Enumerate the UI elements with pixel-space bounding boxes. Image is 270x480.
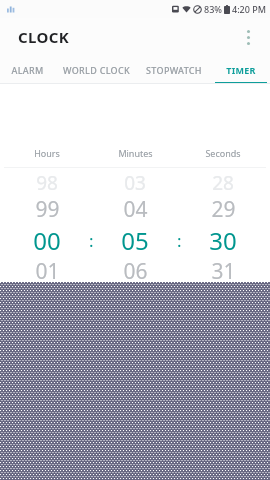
staticText: CLOCK xyxy=(18,27,70,47)
staticText: 04 xyxy=(123,195,148,224)
staticText: 99 xyxy=(35,195,60,224)
staticText: 06 xyxy=(123,257,148,286)
button[interactable]: 98 xyxy=(10,170,84,196)
staticText: 31 xyxy=(211,257,236,286)
staticText: 01 xyxy=(35,257,60,286)
button[interactable]: 04 xyxy=(98,195,172,224)
staticText: 4:20 PM xyxy=(232,3,266,15)
button[interactable]: STOPWATCH xyxy=(137,55,211,84)
button[interactable]: 05 xyxy=(98,224,172,257)
staticText: WORLD CLOCK xyxy=(63,64,130,76)
button[interactable]: TIMER xyxy=(211,55,270,84)
button[interactable]: 01 xyxy=(10,257,84,286)
button[interactable]: ALARM xyxy=(0,55,55,84)
staticText: : xyxy=(177,229,182,252)
staticText: 29 xyxy=(211,195,236,224)
staticText: 83% xyxy=(204,3,222,15)
staticText: 00 xyxy=(33,224,61,257)
staticText: STOPWATCH xyxy=(146,64,202,76)
staticText: 98 xyxy=(36,170,58,196)
staticText: 30 xyxy=(209,224,237,257)
button[interactable]: More options xyxy=(232,21,264,53)
button[interactable]: 31 xyxy=(186,257,260,286)
staticText: Hours xyxy=(34,147,60,159)
staticText: : xyxy=(89,229,94,252)
button[interactable]: WORLD CLOCK xyxy=(55,55,137,84)
button[interactable]: 03 xyxy=(98,170,172,196)
staticText: Seconds xyxy=(205,147,241,159)
button[interactable]: 99 xyxy=(10,195,84,224)
staticText: ALARM xyxy=(11,64,44,76)
button[interactable]: 28 xyxy=(186,170,260,196)
button[interactable]: 30 xyxy=(186,224,260,257)
button[interactable]: 29 xyxy=(186,195,260,224)
staticText: 03 xyxy=(124,170,146,196)
staticText: Minutes xyxy=(118,147,153,159)
button[interactable]: 00 xyxy=(10,224,84,257)
staticText: 05 xyxy=(121,224,149,257)
staticText: 28 xyxy=(212,170,234,196)
button[interactable]: 06 xyxy=(98,257,172,286)
staticText: TIMER xyxy=(226,64,256,76)
